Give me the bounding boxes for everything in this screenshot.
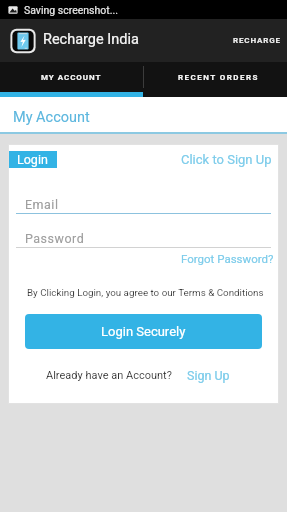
staticText: MY ACCOUNT [41,73,102,82]
button[interactable]: RECHARGE [227,26,287,55]
button[interactable]: Login [8,151,57,168]
staticText: My Account [13,109,90,126]
staticText: Saving screenshot... [24,4,119,16]
staticText: Sign Up [187,368,230,383]
button[interactable]: Login Securely [25,314,262,349]
button[interactable]: Click to Sign Up [181,152,279,167]
button[interactable]: Forgot Password? [181,252,274,265]
staticText: Already have an Account? [46,369,172,382]
staticText: RECENT ORDERS [178,73,259,82]
staticText: Login [17,152,48,167]
staticText: Login Securely [101,324,186,339]
staticText: By Clicking Login, you agree to our Term… [27,287,264,298]
staticText: Password [25,231,85,246]
button[interactable]: MY ACCOUNT [0,62,143,92]
button[interactable]: RECENT ORDERS [144,62,287,92]
staticText: Email [25,197,59,212]
staticText: Forgot Password? [181,252,274,265]
staticText: Recharge India [43,31,139,48]
staticText: Click to Sign Up [181,152,272,167]
button[interactable]: Sign Up [187,368,230,383]
staticText: RECHARGE [233,36,281,45]
